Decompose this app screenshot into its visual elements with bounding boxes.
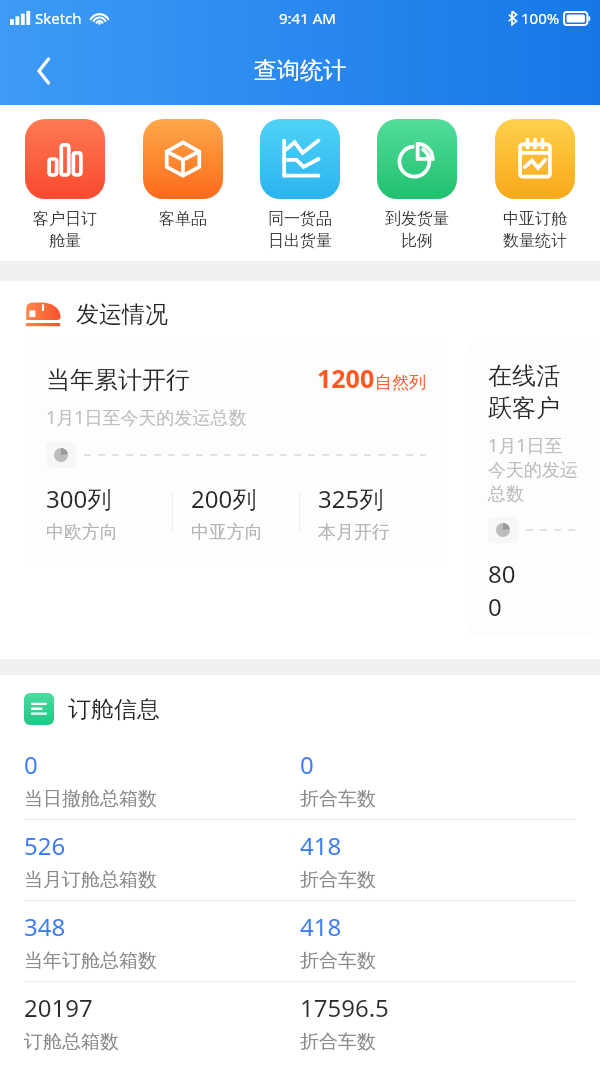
staticText: 325列 [318,482,384,515]
staticText: 当月订舱总箱数 [24,868,157,892]
staticText: 418 [300,829,342,862]
staticText: 自然列 [375,372,426,393]
staticText: 418 [300,910,342,943]
staticText: 折合车数 [300,1030,376,1054]
staticText: 0 [24,748,38,781]
staticText: 中亚方向 [191,521,263,544]
button[interactable]: Back [22,49,66,93]
staticText: 20197 [24,991,93,1024]
staticText: 0 [300,748,314,781]
staticText: 在线活跃客户 [488,361,578,423]
staticText: 当日撤舱总箱数 [24,787,157,811]
staticText: 订舱信息 [68,695,160,724]
staticText: 800家 [488,557,518,619]
button[interactable]: 同一货品 日出货量 [248,119,352,251]
staticText: 折合车数 [300,868,376,892]
staticText: 1月1日至今天的发运总数 [46,405,247,430]
button[interactable]: 中亚订舱 数量统计 [483,119,587,251]
button[interactable]: 0 [0,739,600,819]
staticText: 到发货量 比例 [385,209,449,251]
staticText: 当年订舱总箱数 [24,949,157,973]
staticText: 526 [24,829,66,862]
staticText: 发运情况 [76,300,168,329]
button[interactable]: 在线活跃客户 [466,343,600,637]
button[interactable]: 到发货量 比例 [365,119,469,251]
staticText: 100% [521,8,560,28]
staticText: 同一货品 日出货量 [268,209,332,251]
button[interactable]: 348 [0,901,600,981]
staticText: 客户日订 舱量 [33,209,97,251]
staticText: 1月1日至今天的发运总数 [488,433,578,505]
button[interactable]: 526 [0,820,600,900]
button[interactable]: 客单品 [131,119,235,229]
staticText: 订舱总箱数 [24,1030,119,1054]
staticText: 当年累计开行 [46,365,190,395]
staticText: 348 [24,910,66,943]
button[interactable]: 客户日订 舱量 [13,119,117,251]
staticText: 查询统计 [254,56,346,85]
staticText: 200列 [191,482,257,515]
staticText: 客单品 [159,209,207,229]
staticText: 9:41 AM [279,8,336,28]
staticText: 1200 [317,361,375,395]
staticText: 中亚订舱 数量统计 [503,209,567,251]
button[interactable]: 当年累计开行 [24,343,448,562]
staticText: 17596.5 [300,991,389,1024]
staticText: Sketch [35,8,82,28]
button[interactable]: 20197 [0,982,600,1062]
staticText: 中欧方向 [46,521,118,544]
staticText: 折合车数 [300,949,376,973]
staticText: 300列 [46,482,112,515]
staticText: 本月开行 [318,521,390,544]
staticText: 折合车数 [300,787,376,811]
